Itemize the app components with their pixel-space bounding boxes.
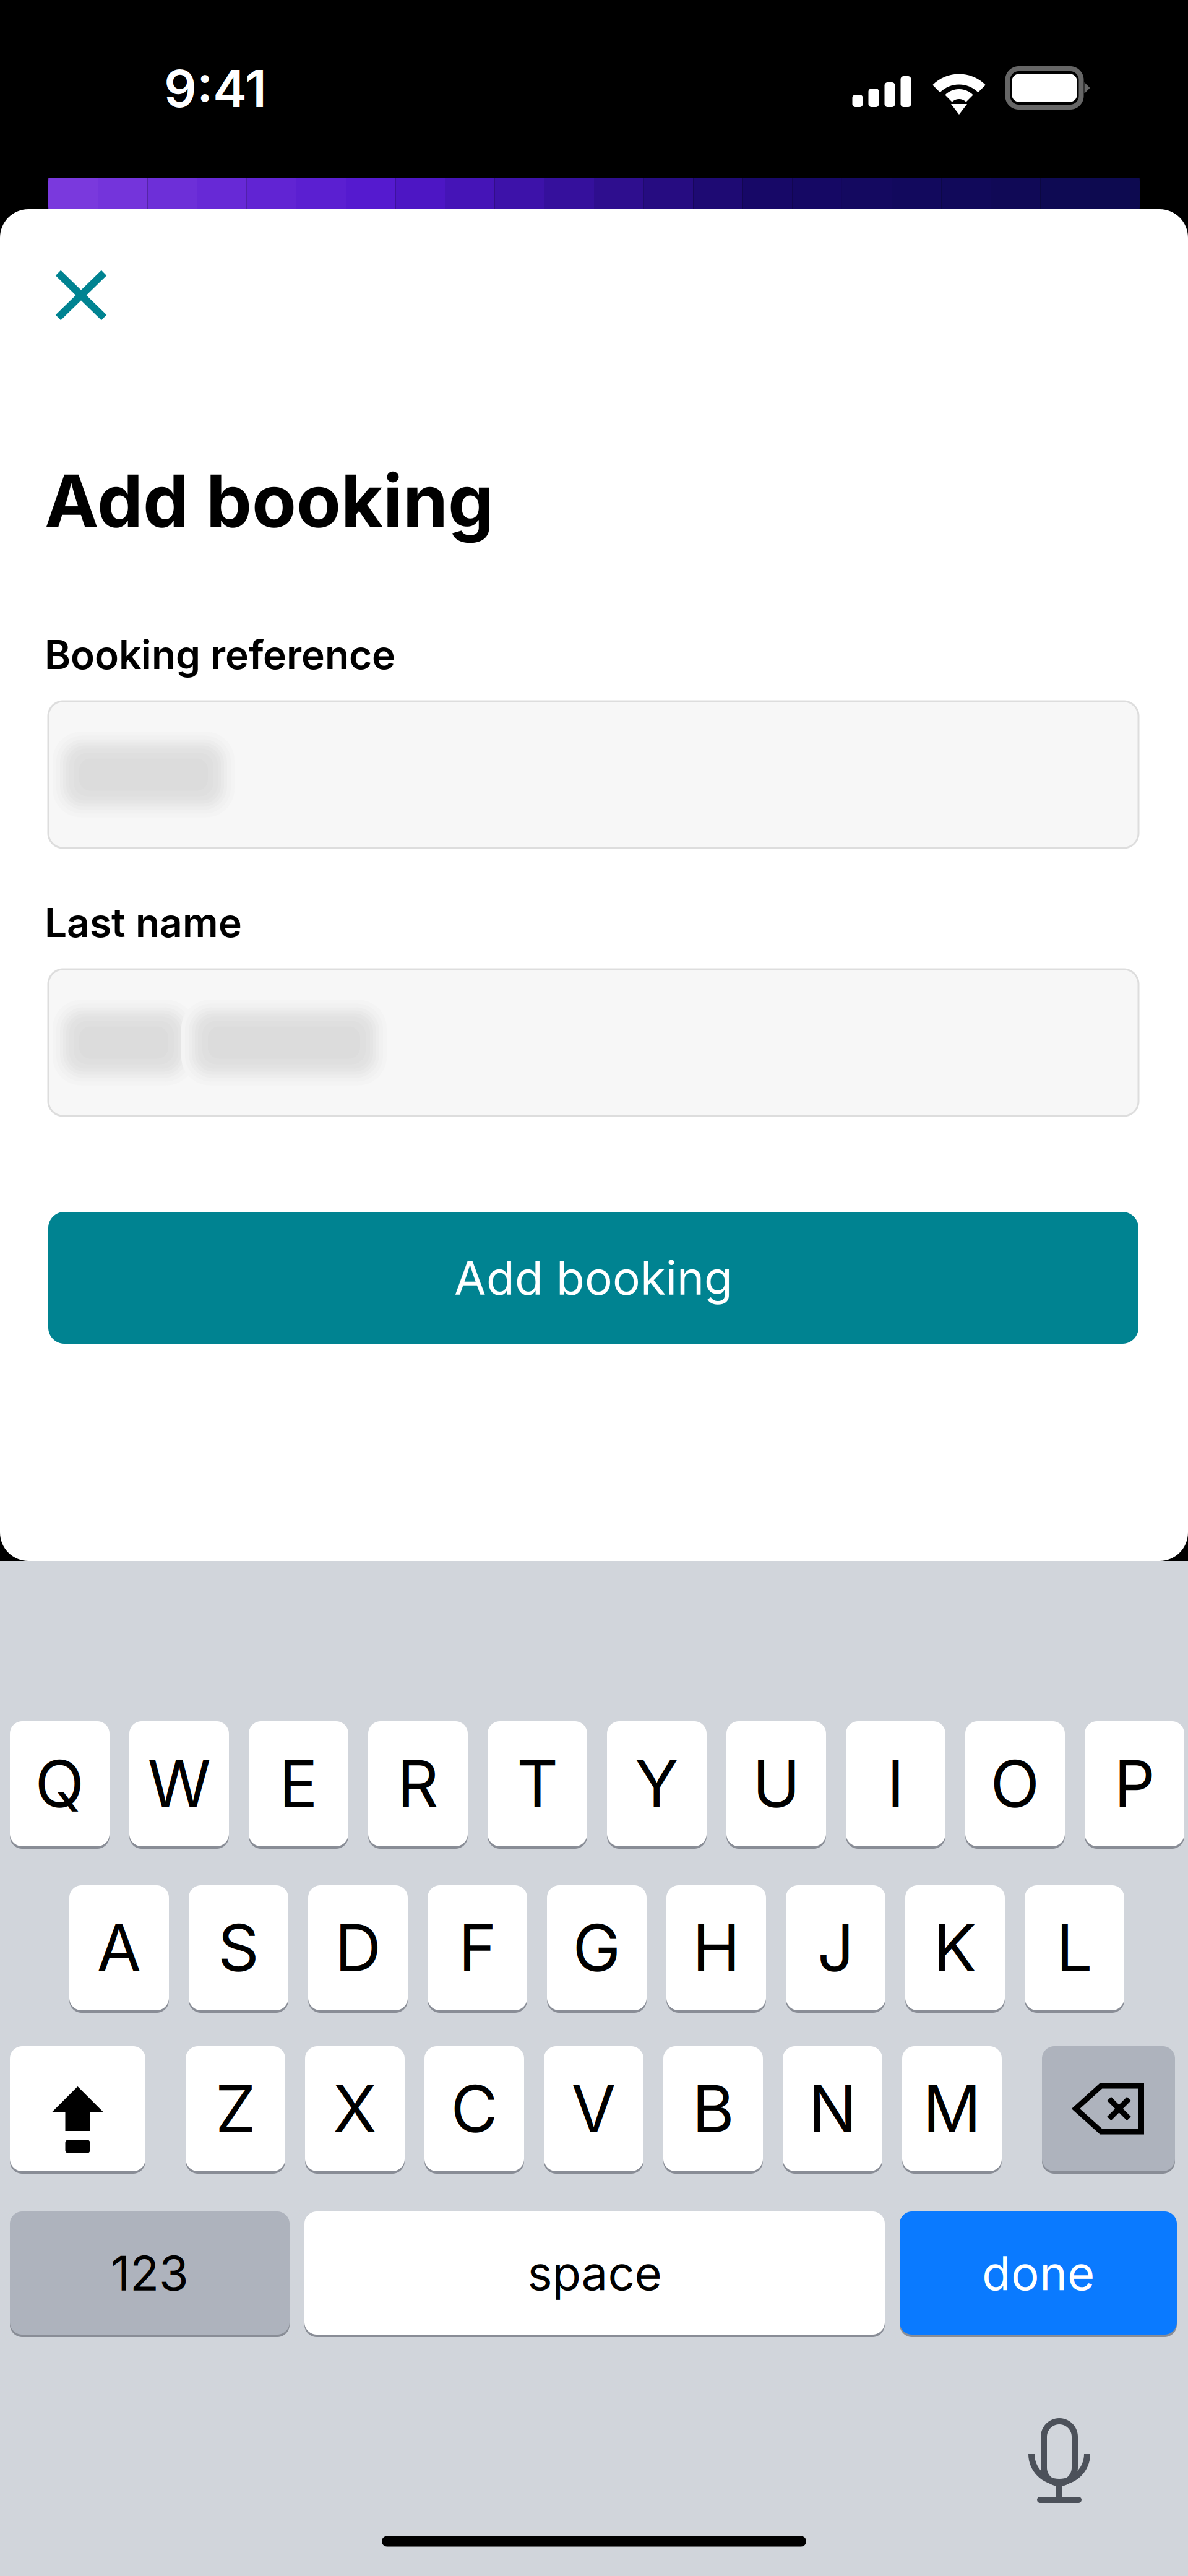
staticText: D xyxy=(335,1909,381,1987)
button[interactable]: E xyxy=(249,1720,348,1848)
button[interactable]: Q xyxy=(10,1720,110,1848)
button[interactable]: Y xyxy=(607,1720,707,1848)
button[interactable]: Dictate xyxy=(1030,2409,1089,2496)
staticText: Add booking xyxy=(454,1250,733,1306)
button[interactable]: Add booking xyxy=(48,1212,1138,1344)
button[interactable]: I xyxy=(846,1720,945,1848)
staticText: Booking reference xyxy=(45,631,395,679)
button[interactable]: N xyxy=(783,2045,882,2172)
staticText: G xyxy=(573,1909,621,1987)
button[interactable]: F xyxy=(428,1884,527,2012)
button[interactable]: A xyxy=(69,1884,169,2012)
staticText: O xyxy=(990,1745,1040,1823)
button[interactable]: B xyxy=(663,2045,763,2172)
staticText: 123 xyxy=(111,2244,189,2302)
staticText: F xyxy=(458,1909,496,1987)
staticText: Add booking xyxy=(45,457,494,545)
button[interactable]: H xyxy=(666,1884,766,2012)
button[interactable]: K xyxy=(905,1884,1005,2012)
staticText: space xyxy=(527,2245,662,2302)
button[interactable]: Shift xyxy=(10,2045,145,2172)
staticText: H xyxy=(692,1909,740,1987)
button[interactable]: R xyxy=(368,1720,468,1848)
staticText: S xyxy=(218,1909,259,1987)
staticText: N xyxy=(808,2070,857,2148)
staticText: M xyxy=(923,2070,981,2148)
staticText: W xyxy=(148,1745,211,1823)
staticText: J xyxy=(817,1909,854,1987)
button[interactable]: X xyxy=(305,2045,405,2172)
button[interactable]: L xyxy=(1025,1884,1124,2012)
button[interactable]: C xyxy=(424,2045,524,2172)
button[interactable]: M xyxy=(902,2045,1002,2172)
staticText: Q xyxy=(35,1745,84,1823)
staticText: Last name xyxy=(45,899,242,947)
button[interactable]: S xyxy=(189,1884,288,2012)
staticText: V xyxy=(571,2070,616,2148)
button[interactable]: G xyxy=(547,1884,647,2012)
button[interactable]: W xyxy=(129,1720,229,1848)
button[interactable]: Close xyxy=(26,245,137,345)
button[interactable]: D xyxy=(308,1884,408,2012)
staticText: I xyxy=(887,1745,904,1823)
staticText: P xyxy=(1114,1745,1155,1823)
staticText: B xyxy=(692,2070,734,2148)
button[interactable]: done xyxy=(900,2210,1177,2336)
staticText: X xyxy=(333,2070,377,2148)
staticText: R xyxy=(397,1745,439,1823)
button[interactable]: 123 xyxy=(10,2210,290,2336)
button[interactable]: P xyxy=(1085,1720,1184,1848)
button[interactable]: Delete xyxy=(1042,2045,1175,2172)
staticText: Y xyxy=(635,1745,679,1823)
staticText: Z xyxy=(215,2070,256,2148)
staticText: 9:41 xyxy=(164,58,267,119)
staticText: C xyxy=(451,2070,498,2148)
button[interactable]: V xyxy=(544,2045,643,2172)
button[interactable]: Z xyxy=(186,2045,285,2172)
staticText: A xyxy=(97,1909,141,1987)
button[interactable]: space xyxy=(304,2210,885,2336)
staticText: done xyxy=(982,2245,1095,2302)
staticText: T xyxy=(517,1745,558,1823)
staticText: K xyxy=(933,1909,977,1987)
staticText: L xyxy=(1056,1909,1093,1987)
staticText: U xyxy=(752,1745,800,1823)
button[interactable]: T xyxy=(488,1720,587,1848)
staticText: E xyxy=(279,1745,318,1823)
button[interactable]: O xyxy=(965,1720,1065,1848)
button[interactable]: U xyxy=(726,1720,826,1848)
button[interactable]: J xyxy=(786,1884,885,2012)
